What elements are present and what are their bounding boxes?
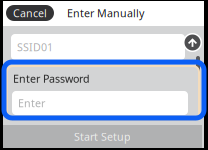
- button[interactable]: Join network: [183, 33, 202, 52]
- staticText: Start Setup: [74, 129, 131, 144]
- staticText: Enter: [18, 96, 45, 110]
- staticText: Enter Password: [13, 71, 90, 86]
- staticText: SSID01: [17, 40, 53, 54]
- staticText: Enter Manually: [67, 6, 144, 20]
- button[interactable]: Cancel: [6, 5, 54, 21]
- staticText: Cancel: [13, 6, 47, 20]
- button[interactable]: Start Setup: [3, 125, 202, 148]
